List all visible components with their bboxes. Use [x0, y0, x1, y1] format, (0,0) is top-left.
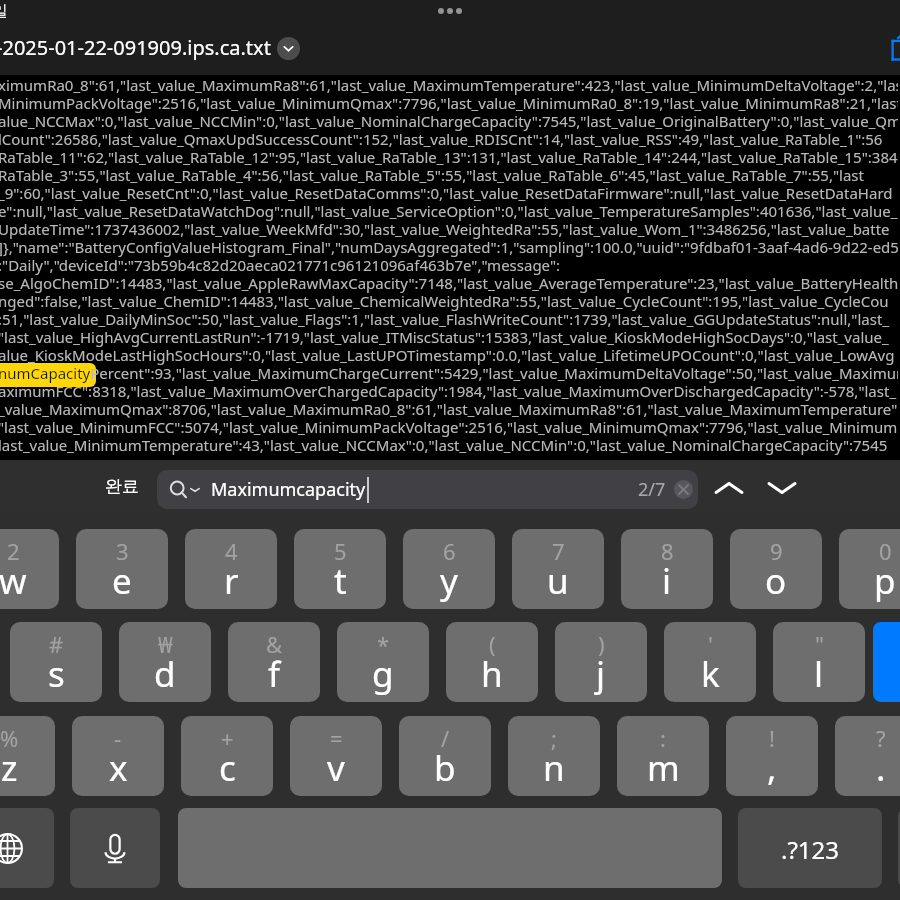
- button[interactable]: 5: [294, 529, 386, 609]
- staticText: .: [876, 744, 886, 792]
- button[interactable]: File options: [277, 37, 300, 60]
- staticText: *: [377, 629, 390, 659]
- button[interactable]: -: [72, 716, 164, 796]
- staticText: _9":60,"last_value_ResetCnt":0,"last_val…: [0, 185, 898, 203]
- staticText: z: [1, 744, 18, 792]
- staticText: ): [598, 629, 605, 659]
- button[interactable]: Previous result: [707, 466, 751, 510]
- staticText: :51,"last_value_DailyMinSoc":50,"last_va…: [0, 311, 898, 329]
- staticText: e":null,"last_value_ResetDataWatchDog":n…: [0, 203, 898, 221]
- staticText: "last_value_HighAvgCurrentLastRun":-1719…: [0, 329, 898, 347]
- staticText: &: [266, 629, 283, 659]
- staticText: (: [489, 629, 496, 659]
- button[interactable]: ?: [835, 716, 900, 796]
- button[interactable]: Clear: [674, 480, 693, 499]
- staticText: alue_NCCMax":0,"last_value_NCCMin":0,"la…: [0, 113, 898, 131]
- staticText: #: [49, 629, 64, 659]
- staticText: j: [596, 650, 606, 698]
- button[interactable]: %: [0, 716, 55, 796]
- staticText: !: [769, 723, 775, 753]
- staticText: -: [114, 723, 122, 753]
- staticText: m: [647, 744, 680, 792]
- staticText: ,: [767, 744, 777, 792]
- staticText: k: [701, 650, 720, 698]
- button[interactable]: [898, 808, 900, 888]
- button[interactable]: &: [228, 622, 320, 702]
- staticText: 완료: [105, 476, 139, 497]
- button[interactable]: ): [555, 622, 647, 702]
- button[interactable]: 7: [512, 529, 604, 609]
- staticText: =: [330, 723, 343, 753]
- button[interactable]: 0: [839, 529, 900, 609]
- staticText: ximumRa0_8":61,"last_value_MaximumRa8":6…: [0, 77, 898, 95]
- staticText: c: [219, 744, 236, 792]
- button[interactable]: Share: [886, 31, 900, 71]
- staticText: o: [765, 557, 787, 605]
- staticText: h: [481, 650, 503, 698]
- button[interactable]: Maximumcapacity: [170, 470, 693, 509]
- staticText: last_value_MinimumTemperature":43,"last_…: [0, 437, 898, 455]
- staticText: ?: [876, 723, 886, 753]
- staticText: 6: [443, 536, 456, 566]
- staticText: x: [109, 744, 128, 792]
- staticText: p: [874, 557, 896, 605]
- staticText: 4: [225, 536, 238, 566]
- button[interactable]: /: [399, 716, 491, 796]
- button[interactable]: Next result: [760, 466, 804, 510]
- staticText: r: [224, 557, 239, 605]
- staticText: RaTable_11":62,"last_value_RaTable_12":9…: [0, 149, 898, 167]
- staticText: 8: [661, 536, 674, 566]
- button[interactable]: 3: [76, 529, 168, 609]
- button[interactable]: 완료: [100, 471, 144, 501]
- staticText: nged":false,"last_value_ChemID":14483,"l…: [0, 293, 898, 311]
- staticText: :"Daily","deviceId":"73b59b4c82d20aeca02…: [0, 257, 898, 275]
- button[interactable]: 8: [621, 529, 713, 609]
- staticText: l: [814, 650, 824, 698]
- staticText: UpdateTime":1737436002,"last_value_WeekM…: [0, 221, 898, 239]
- staticText: v: [327, 744, 345, 792]
- button[interactable]: 4: [185, 529, 277, 609]
- button[interactable]: ;: [508, 716, 600, 796]
- staticText: b: [434, 744, 456, 792]
- staticText: d: [154, 650, 176, 698]
- button[interactable]: Change keyboard: [0, 808, 54, 888]
- staticText: ': [708, 629, 713, 659]
- staticText: f: [268, 650, 281, 698]
- staticText: w: [0, 557, 27, 605]
- button[interactable]: 6: [403, 529, 495, 609]
- button[interactable]: +: [181, 716, 273, 796]
- staticText: n: [543, 744, 565, 792]
- staticText: aximumFCC":8318,"last_value_MaximumOverC…: [0, 383, 898, 401]
- staticText: alue_KioskModeLastHighSocHours":0,"last_…: [0, 347, 898, 365]
- staticText: y: [440, 557, 458, 605]
- button[interactable]: (: [446, 622, 538, 702]
- staticText: 2: [7, 536, 20, 566]
- button[interactable]: ': [664, 622, 756, 702]
- staticText: ;: [551, 723, 557, 753]
- staticText: 3: [116, 536, 129, 566]
- staticText: lCount":26586,"last_value_QmaxUpdSuccess…: [0, 131, 898, 149]
- staticText: MinimumPackVoltage":2516,"last_value_Min…: [0, 95, 898, 113]
- button[interactable]: !: [726, 716, 818, 796]
- button[interactable]: :: [617, 716, 709, 796]
- staticText: .?123: [781, 833, 840, 866]
- button[interactable]: 9: [730, 529, 822, 609]
- staticText: g: [372, 650, 394, 698]
- staticText: ]},"name":"BatteryConfigValueHistogram_F…: [0, 239, 898, 257]
- staticText: -2025-01-22-091909.ips.ca.txt: [0, 34, 271, 61]
- button[interactable]: Dictation: [70, 808, 160, 888]
- button[interactable]: ₩: [119, 622, 211, 702]
- button[interactable]: ": [773, 622, 865, 702]
- staticText: e: [112, 557, 132, 605]
- button[interactable]: 2: [0, 529, 59, 609]
- button[interactable]: .?123: [738, 808, 882, 888]
- button[interactable]: *: [337, 622, 429, 702]
- button[interactable]: Return: [873, 622, 900, 702]
- staticText: u: [547, 557, 569, 605]
- staticText: Maximumcapacity: [211, 477, 366, 502]
- staticText: "last_value_MinimumFCC":5074,"last_value…: [0, 419, 898, 437]
- button[interactable]: #: [10, 622, 102, 702]
- button[interactable]: =: [290, 716, 382, 796]
- staticText: numCapacityPercent":93,"last_value_Maxim…: [0, 365, 898, 383]
